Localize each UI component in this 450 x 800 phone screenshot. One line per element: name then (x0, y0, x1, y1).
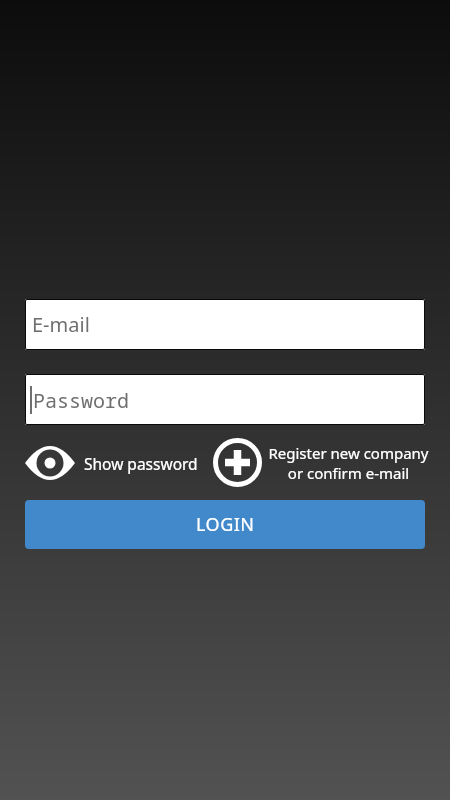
button[interactable]: LOGIN (25, 500, 425, 549)
staticText: Show password (84, 453, 198, 474)
button[interactable]: Register new company or confirm e-mail (213, 438, 429, 487)
staticText: Register new company or confirm e-mail (268, 443, 429, 483)
button[interactable]: Show password (25, 446, 198, 480)
button[interactable]: Password (25, 374, 425, 425)
button[interactable]: E-mail (25, 299, 425, 350)
staticText: Password (33, 387, 129, 414)
staticText: E-mail (32, 311, 90, 338)
staticText: LOGIN (196, 512, 255, 537)
